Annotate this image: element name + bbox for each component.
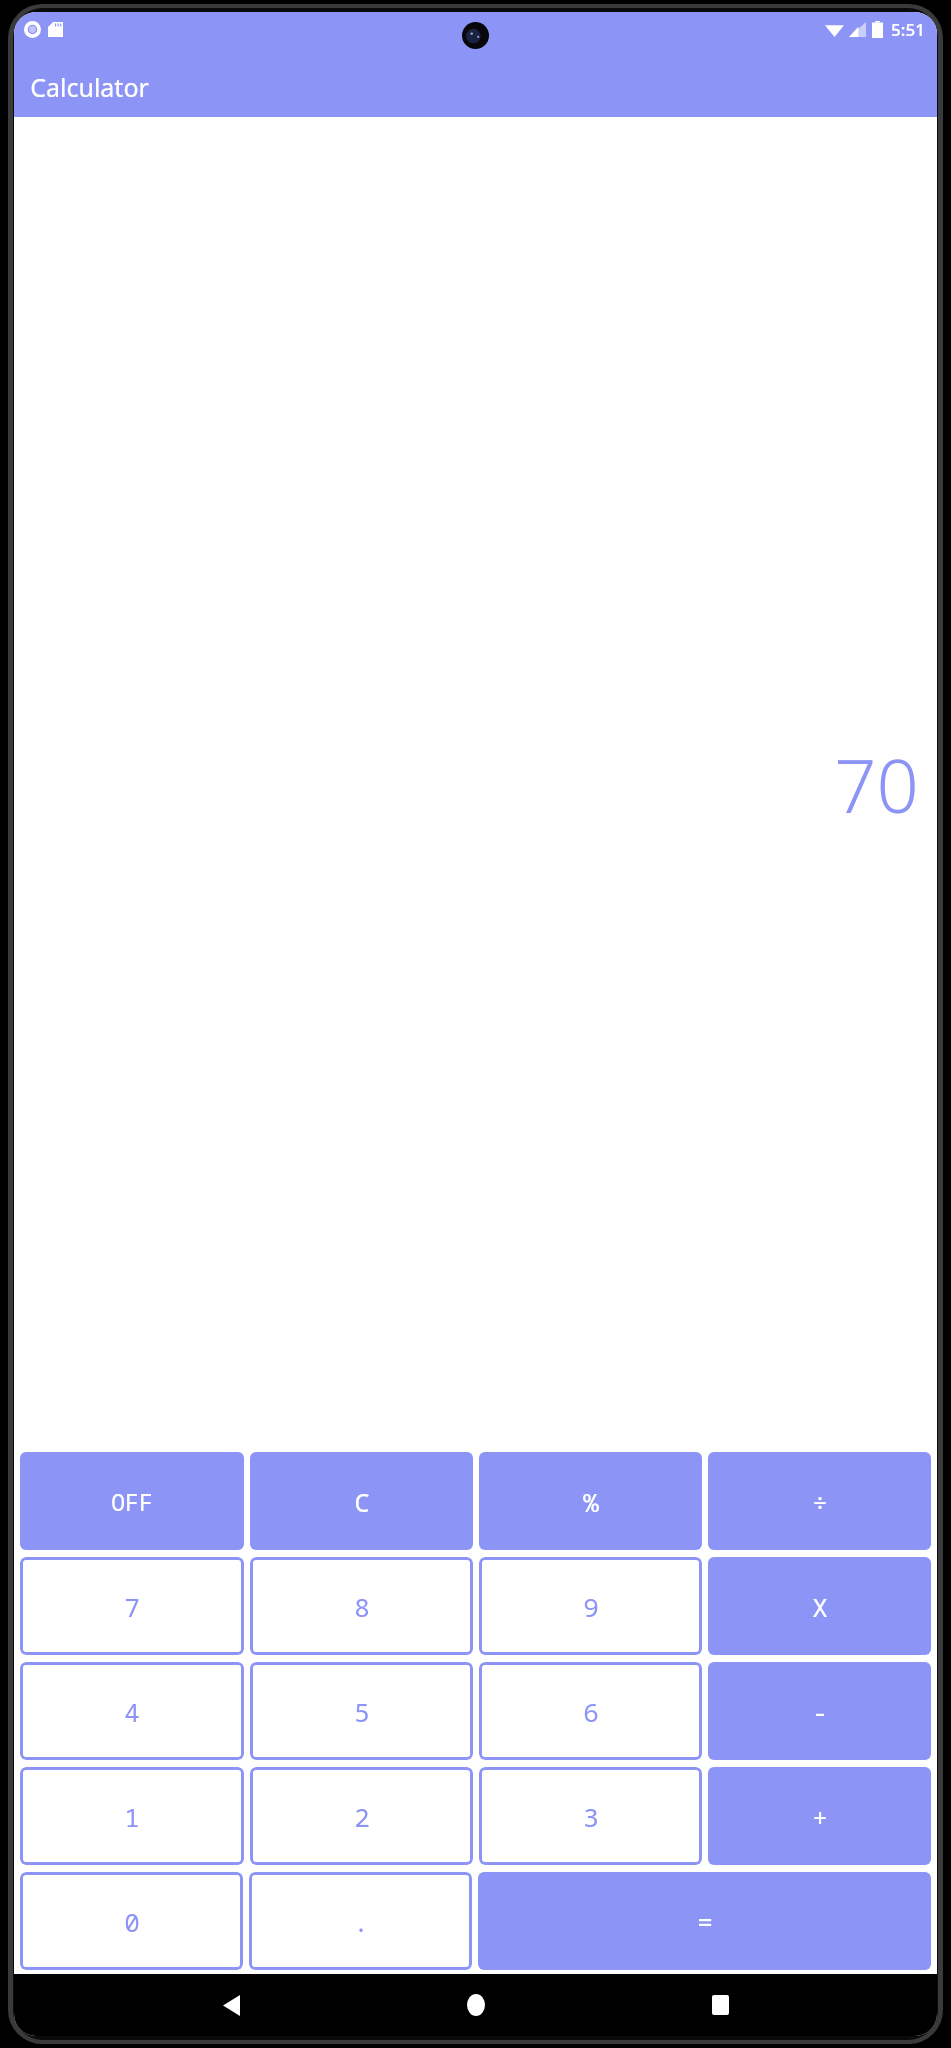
staticText: 5:51	[891, 18, 925, 41]
button[interactable]: +	[708, 1767, 931, 1865]
staticText: 6	[583, 1694, 599, 1729]
button[interactable]: 6	[479, 1662, 702, 1760]
staticText: =	[697, 1904, 713, 1939]
button[interactable]: OFF	[20, 1452, 244, 1550]
button[interactable]: Recent apps	[692, 1977, 748, 2033]
staticText: C	[354, 1484, 370, 1519]
button[interactable]: C	[250, 1452, 473, 1550]
button[interactable]: 0	[20, 1872, 243, 1970]
button[interactable]: 2	[250, 1767, 473, 1865]
button[interactable]: %	[479, 1452, 702, 1550]
button[interactable]: 1	[20, 1767, 244, 1865]
staticText: -	[812, 1694, 828, 1729]
staticText: 0	[124, 1904, 140, 1939]
button[interactable]: -	[708, 1662, 931, 1760]
button[interactable]: ÷	[708, 1452, 931, 1550]
button[interactable]: .	[249, 1872, 472, 1970]
staticText: 8	[354, 1589, 370, 1624]
staticText: %	[583, 1484, 599, 1519]
staticText: 4	[124, 1694, 140, 1729]
staticText: 2	[354, 1799, 370, 1834]
staticText: 9	[583, 1589, 599, 1624]
staticText: 5	[354, 1694, 370, 1729]
button[interactable]: X	[708, 1557, 931, 1655]
button[interactable]: =	[478, 1872, 931, 1970]
button[interactable]: 4	[20, 1662, 244, 1760]
staticText: X	[812, 1589, 828, 1624]
staticText: Calculator	[30, 70, 149, 104]
button[interactable]: Back	[203, 1977, 259, 2033]
button[interactable]: 8	[250, 1557, 473, 1655]
staticText: 3	[583, 1799, 599, 1834]
button[interactable]: 5	[250, 1662, 473, 1760]
staticText: .	[353, 1904, 369, 1939]
button[interactable]: 9	[479, 1557, 702, 1655]
button[interactable]: 7	[20, 1557, 244, 1655]
staticText: 70	[834, 734, 919, 835]
button[interactable]: Home	[448, 1977, 504, 2033]
staticText: ÷	[812, 1484, 828, 1519]
button[interactable]: 3	[479, 1767, 702, 1865]
staticText: 1	[124, 1799, 140, 1834]
staticText: OFF	[111, 1486, 153, 1517]
staticText: 7	[124, 1589, 140, 1624]
staticText: +	[812, 1799, 828, 1834]
